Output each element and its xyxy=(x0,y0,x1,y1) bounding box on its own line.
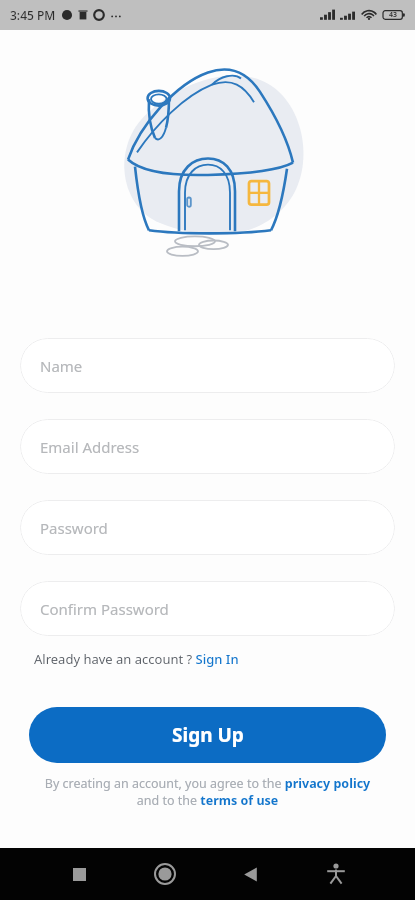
button[interactable]: Confirm Password xyxy=(20,581,395,636)
staticText: Sign Up xyxy=(172,722,244,748)
staticText: Name xyxy=(40,356,83,376)
button[interactable]: Accessibility xyxy=(312,850,360,898)
button[interactable]: Back xyxy=(226,850,274,898)
staticText: Already have an account ? Sign In xyxy=(34,650,239,668)
staticText: By creating an account, you agree to the… xyxy=(42,775,373,809)
staticText: 43 xyxy=(389,10,398,20)
button[interactable]: By creating an account, you agree to the… xyxy=(42,775,373,809)
button[interactable]: Email Address xyxy=(20,419,395,474)
button[interactable]: Sign Up xyxy=(29,707,386,763)
button[interactable]: Recents xyxy=(55,850,103,898)
button[interactable]: Password xyxy=(20,500,395,555)
button[interactable]: Name xyxy=(20,338,395,393)
staticText: Confirm Password xyxy=(40,599,169,619)
staticText: Password xyxy=(40,518,108,538)
button[interactable]: Already have an account ? Sign In xyxy=(34,650,415,668)
staticText: 3:45 PM xyxy=(10,7,56,23)
button[interactable]: Home xyxy=(141,850,189,898)
staticText: Email Address xyxy=(40,437,140,457)
